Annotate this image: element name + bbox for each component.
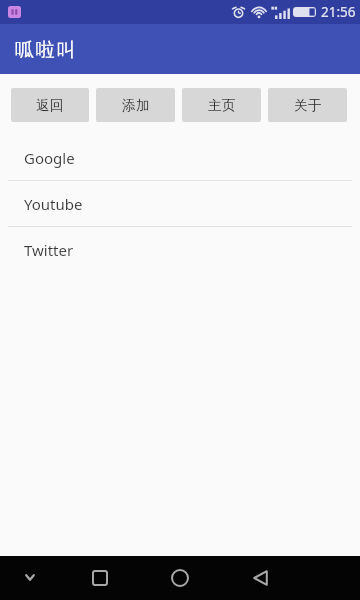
staticText: Youtube bbox=[24, 194, 83, 214]
button[interactable]: 主页 bbox=[182, 88, 261, 122]
staticText: 主页 bbox=[208, 97, 236, 114]
button[interactable]: Twitter bbox=[0, 227, 360, 272]
button[interactable]: 添加 bbox=[96, 88, 175, 122]
button[interactable]: Google bbox=[0, 135, 360, 180]
button[interactable]: Youtube bbox=[0, 181, 360, 226]
staticText: 呱啦叫 bbox=[15, 38, 77, 62]
staticText: 返回 bbox=[36, 97, 64, 114]
button[interactable]: Back bbox=[238, 556, 282, 600]
staticText: 添加 bbox=[122, 97, 150, 114]
button[interactable]: Hide keyboard bbox=[8, 556, 52, 600]
button[interactable]: Home bbox=[158, 556, 202, 600]
staticText: Google bbox=[24, 148, 75, 168]
staticText: 21:56 bbox=[321, 3, 356, 21]
button[interactable]: Recents bbox=[78, 556, 122, 600]
staticText: 关于 bbox=[294, 97, 322, 114]
button[interactable]: 返回 bbox=[11, 88, 89, 122]
staticText: Twitter bbox=[24, 240, 74, 260]
button[interactable]: 关于 bbox=[268, 88, 347, 122]
